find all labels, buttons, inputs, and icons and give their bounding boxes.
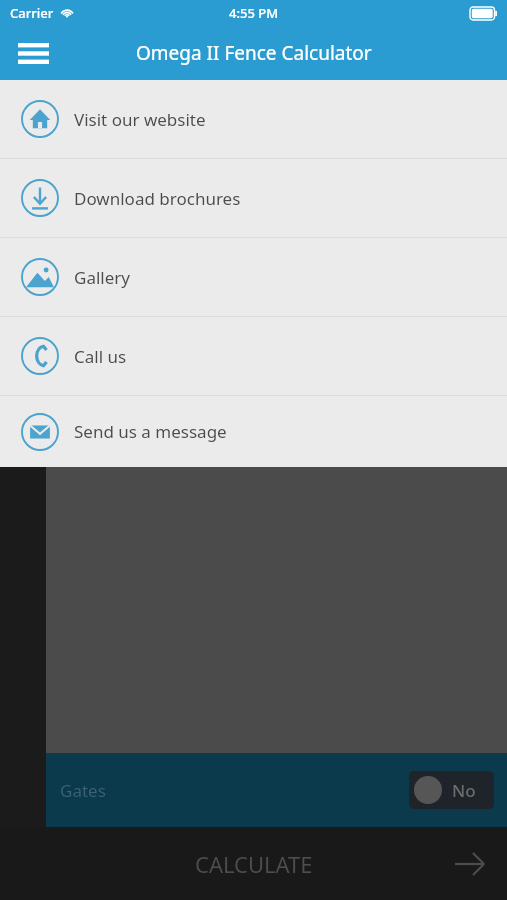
- staticText: Omega II Fence Calculator: [136, 40, 372, 66]
- staticText: Carrier: [10, 4, 54, 22]
- button[interactable]: Gallery: [0, 238, 507, 316]
- staticText: 4:55 PM: [229, 4, 279, 22]
- button[interactable]: Size of post: [286, 61, 493, 97]
- button[interactable]: Download brochures: [0, 159, 507, 237]
- staticText: Gallery: [74, 266, 130, 289]
- button[interactable]: Call us: [0, 317, 507, 395]
- button[interactable]: No: [409, 771, 494, 809]
- staticText: Gates: [60, 779, 106, 802]
- staticText: Visit our website: [74, 108, 206, 131]
- button[interactable]: Choose a post: [58, 61, 264, 97]
- staticText: Send us a message: [74, 420, 227, 443]
- staticText: Call us: [74, 345, 127, 368]
- staticText: No: [452, 779, 476, 802]
- button[interactable]: Visit our website: [0, 80, 507, 158]
- button[interactable]: Send us a message: [0, 396, 507, 467]
- staticText: Choose a post: [68, 68, 175, 90]
- staticText: Download brochures: [74, 187, 241, 210]
- staticText: CALCULATE: [195, 849, 313, 879]
- other: Next: [453, 847, 487, 881]
- staticText: Post attachment: [58, 118, 182, 140]
- button[interactable]: Open navigation menu: [11, 31, 55, 75]
- staticText: 3: [20, 101, 27, 116]
- button[interactable]: CALCULATE: [0, 827, 507, 900]
- staticText: Post size (in): [286, 31, 380, 53]
- staticText: Size of post: [296, 68, 382, 90]
